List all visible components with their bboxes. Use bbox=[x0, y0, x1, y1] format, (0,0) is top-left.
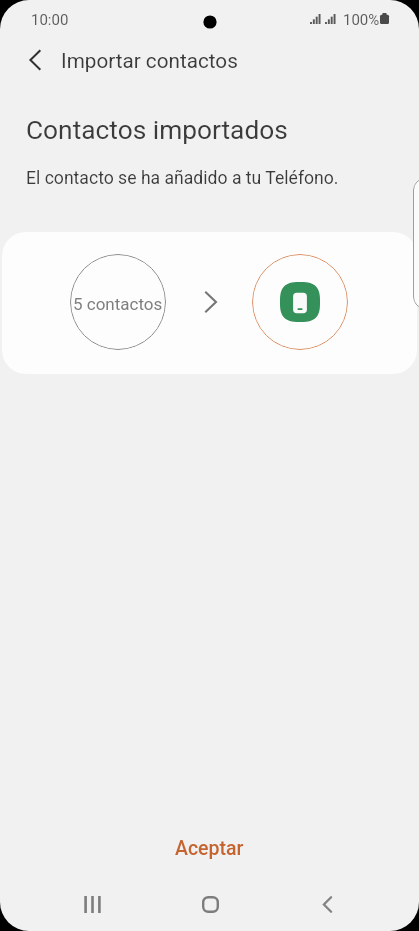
button[interactable]: Recent apps bbox=[67, 879, 117, 929]
staticText: 100% bbox=[343, 11, 380, 29]
button[interactable]: Back bbox=[302, 879, 352, 929]
staticText: Aceptar bbox=[175, 837, 244, 860]
button[interactable]: Home bbox=[185, 879, 235, 929]
staticText: 10:00 bbox=[31, 11, 69, 29]
button[interactable]: 5 contactos bbox=[2, 232, 417, 374]
button[interactable]: Back bbox=[16, 41, 54, 79]
button[interactable]: Aceptar bbox=[0, 827, 419, 869]
staticText: Importar contactos bbox=[61, 49, 238, 73]
staticText: 5 contactos bbox=[73, 294, 163, 314]
staticText: Contactos importados bbox=[26, 115, 288, 146]
staticText: El contacto se ha añadido a tu Teléfono. bbox=[26, 168, 339, 189]
